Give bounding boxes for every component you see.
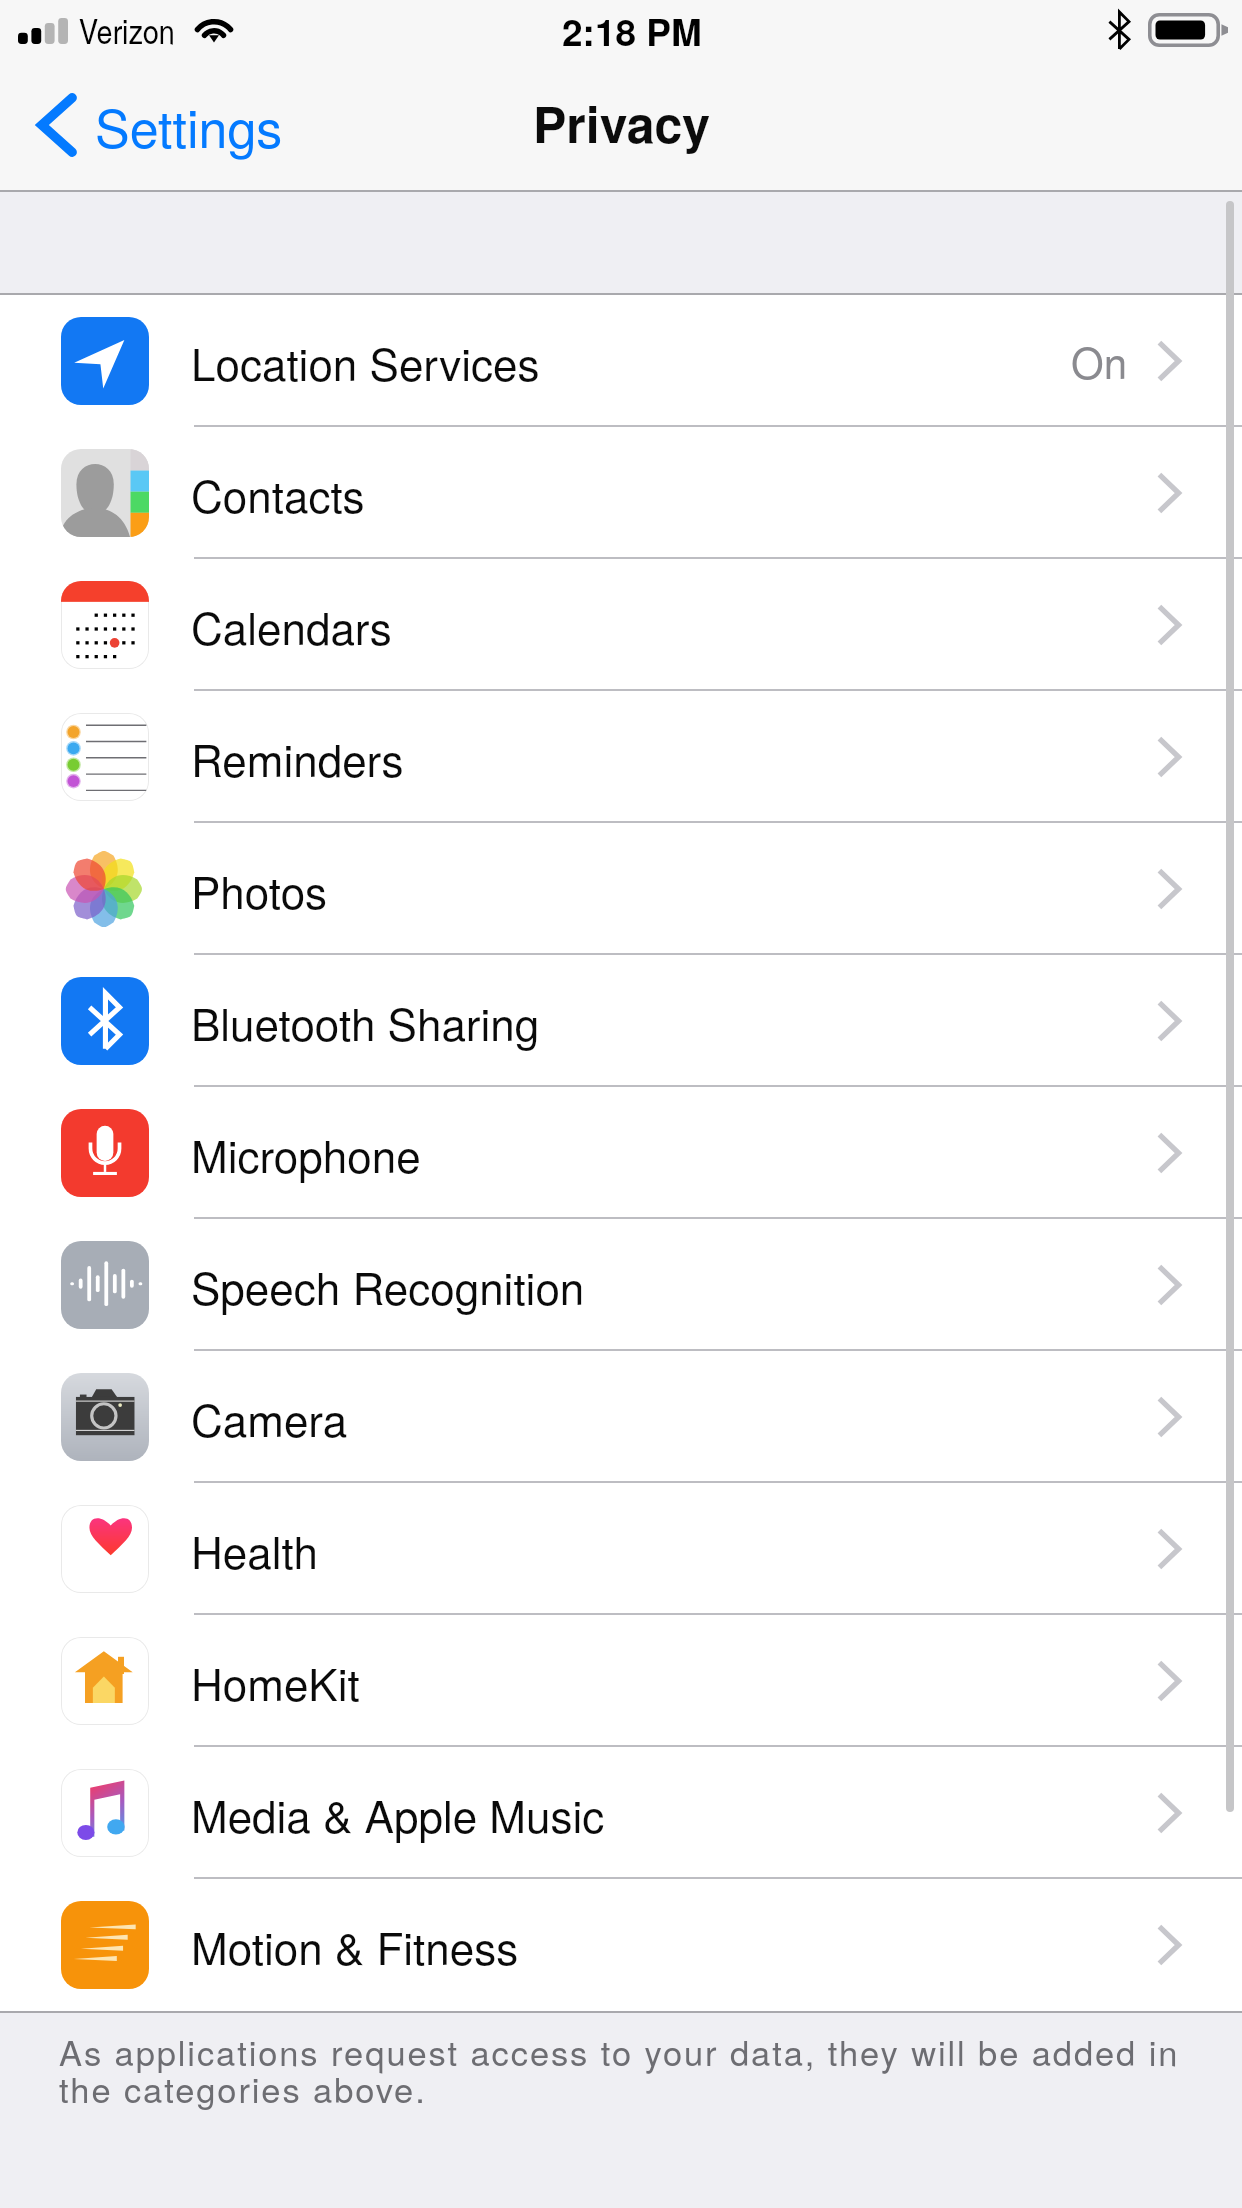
button[interactable]: Contacts <box>0 427 1242 559</box>
button[interactable]: Bluetooth Sharing <box>0 955 1242 1087</box>
staticText: Health <box>191 1518 318 1581</box>
staticText: Verizon <box>79 6 175 54</box>
button[interactable]: Photos <box>0 823 1242 955</box>
staticText: Photos <box>191 858 328 921</box>
staticText: Bluetooth Sharing <box>191 990 540 1053</box>
button[interactable]: Health <box>0 1483 1242 1615</box>
button[interactable]: Location Services <box>0 295 1242 427</box>
button[interactable]: Motion & Fitness <box>0 1879 1242 2011</box>
staticText: HomeKit <box>191 1650 360 1713</box>
staticText: Privacy <box>533 87 711 159</box>
button[interactable]: HomeKit <box>0 1615 1242 1747</box>
staticText: Location Services <box>191 330 540 393</box>
staticText: Microphone <box>191 1122 421 1185</box>
staticText: Motion & Fitness <box>191 1914 519 1977</box>
staticText: As applications request access to your d… <box>59 2026 1198 2112</box>
button[interactable]: Microphone <box>0 1087 1242 1219</box>
staticText: 2:18 PM <box>562 4 702 57</box>
staticText: On <box>1071 331 1128 391</box>
staticText: Calendars <box>191 594 392 657</box>
button[interactable]: Back to Settings <box>0 60 305 190</box>
staticText: Camera <box>191 1386 348 1449</box>
staticText: Speech Recognition <box>191 1254 585 1317</box>
staticText: Contacts <box>191 462 365 525</box>
button[interactable]: Calendars <box>0 559 1242 691</box>
button[interactable]: Media & Apple Music <box>0 1747 1242 1879</box>
staticText: Settings <box>95 88 283 162</box>
button[interactable]: Speech Recognition <box>0 1219 1242 1351</box>
staticText: Reminders <box>191 726 404 789</box>
button[interactable]: Reminders <box>0 691 1242 823</box>
button[interactable]: Camera <box>0 1351 1242 1483</box>
staticText: Media & Apple Music <box>191 1782 605 1845</box>
